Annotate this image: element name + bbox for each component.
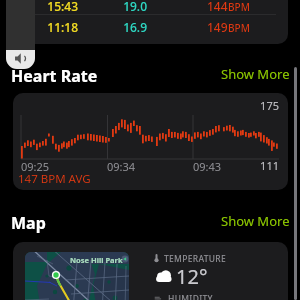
staticText: BPM [228, 21, 250, 35]
staticText: 175 [259, 98, 279, 113]
button[interactable]: 15:43 [13, 0, 288, 17]
staticText: TEMPERATURE [164, 253, 227, 265]
staticText: 111 [259, 158, 279, 173]
staticText: Show More [221, 212, 290, 230]
staticText: HUMIDITY [168, 293, 213, 300]
staticText: 144 [207, 0, 228, 14]
staticText: 19.0 [105, 0, 147, 14]
button[interactable]: Nose Hill Park [13, 242, 288, 300]
staticText: 15:43 [25, 0, 78, 14]
button[interactable]: Heart Rate [11, 65, 98, 87]
button[interactable]: Show More [221, 65, 290, 83]
staticText: 11:18 [25, 19, 78, 35]
staticText: Show More [221, 65, 290, 83]
staticText: 09:25 [21, 159, 50, 174]
button[interactable]: Show More [221, 212, 290, 230]
staticText: 12° [176, 263, 208, 290]
button[interactable]: Map [11, 212, 46, 234]
button[interactable]: 15:43 [13, 0, 288, 44]
staticText: 147 BPM AVG [18, 171, 91, 187]
staticText: Map [11, 212, 46, 234]
staticText: 16.9 [105, 19, 147, 35]
staticText: Nose Hill Park [70, 255, 123, 265]
button[interactable]: 11:18 [13, 17, 288, 38]
staticText: Heart Rate [11, 65, 98, 87]
button[interactable]: Volume [6, 0, 35, 69]
staticText: BPM [228, 0, 250, 14]
staticText: 09:43 [193, 159, 222, 174]
button[interactable]: 175 [13, 93, 288, 190]
staticText: 09:34 [107, 159, 136, 174]
staticText: 149 [207, 19, 228, 35]
